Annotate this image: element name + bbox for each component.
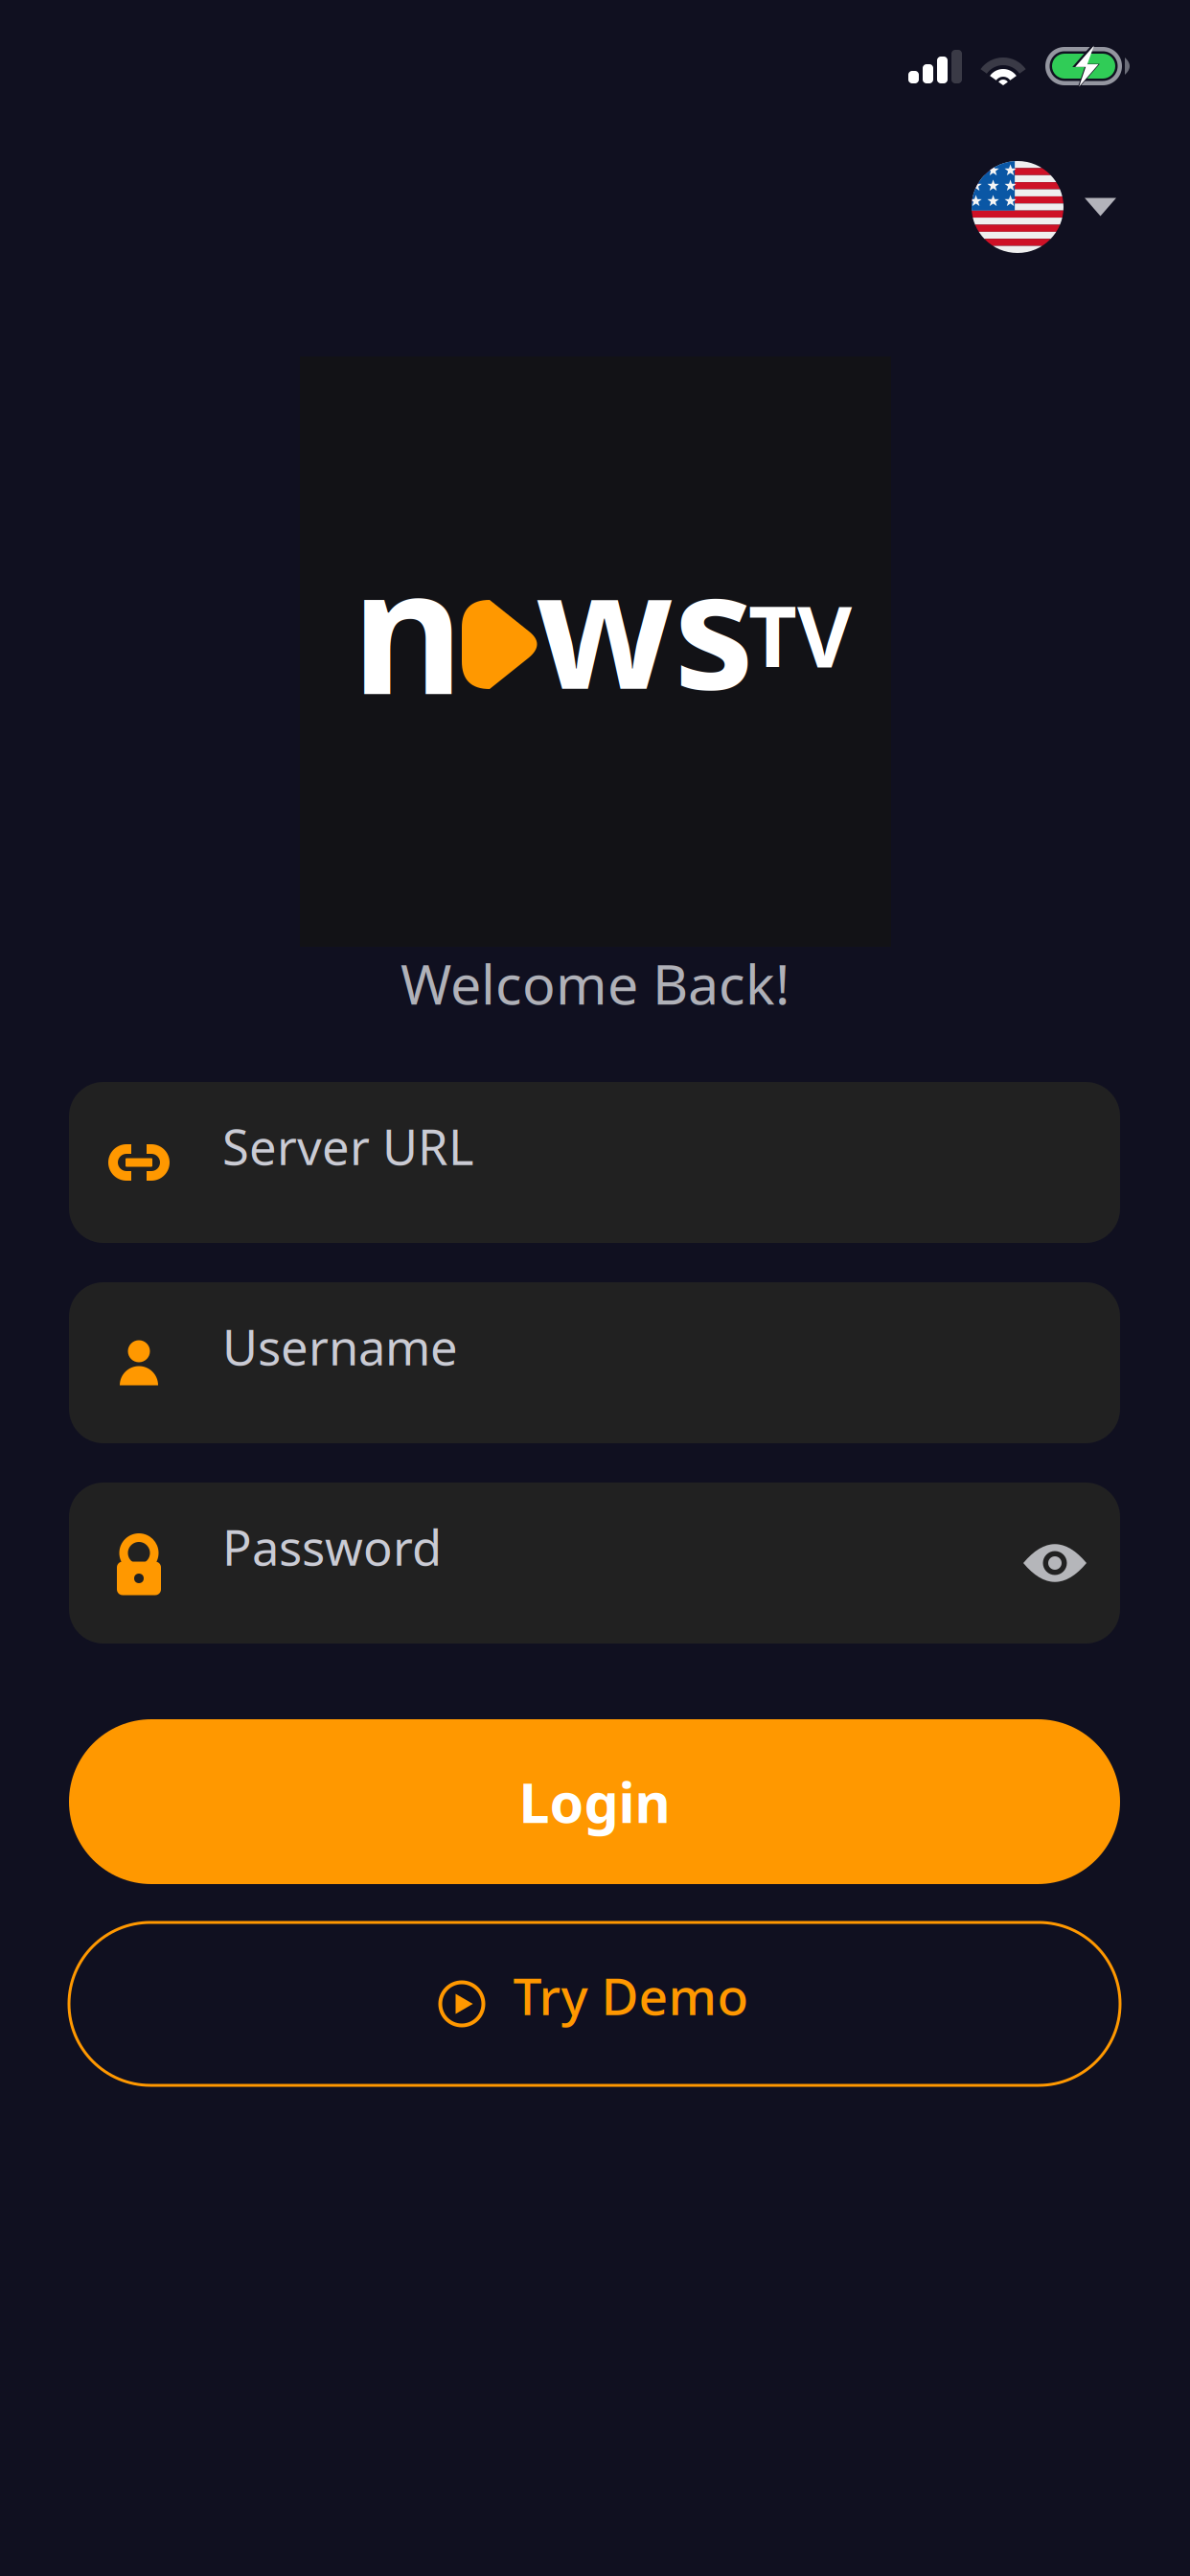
staticText: n (352, 513, 464, 742)
button[interactable]: Password (69, 1483, 1120, 1644)
staticText: Try Demo (513, 1961, 749, 2029)
button[interactable]: Select language (972, 161, 1116, 253)
button[interactable]: Show password (1005, 1513, 1105, 1613)
button[interactable]: Username (69, 1282, 1120, 1443)
button[interactable]: Server URL (69, 1082, 1120, 1243)
staticText: Username (222, 1314, 458, 1379)
staticText: ws (536, 519, 754, 733)
button[interactable]: Try Demo (69, 1922, 1120, 2085)
staticText: Login (519, 1765, 670, 1838)
button[interactable]: Login (69, 1719, 1120, 1884)
staticText: Server URL (222, 1114, 474, 1178)
staticText: Welcome Back! (400, 947, 790, 1020)
staticText: Password (222, 1515, 442, 1579)
staticText: TV (748, 579, 852, 691)
